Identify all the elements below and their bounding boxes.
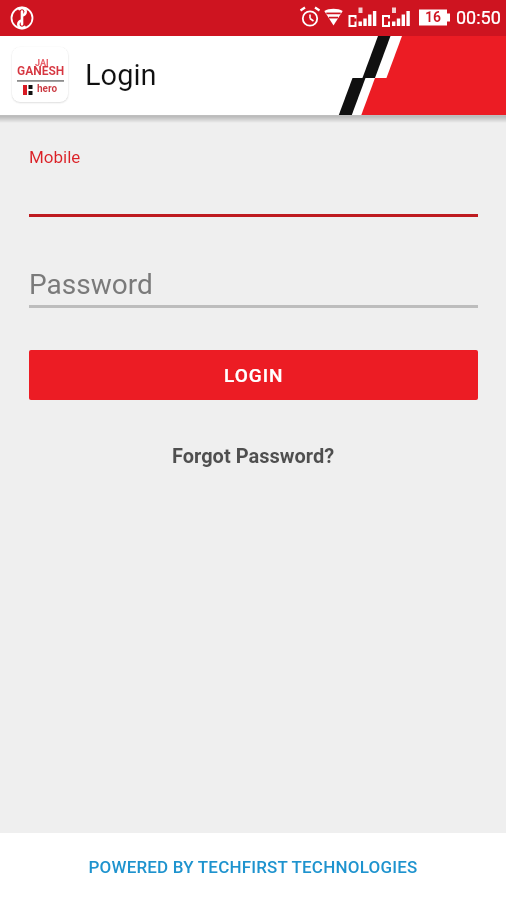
staticText: Mobile bbox=[29, 147, 81, 167]
button[interactable]: Mobile bbox=[29, 147, 506, 217]
button[interactable]: Password bbox=[29, 268, 506, 308]
button[interactable]: Jai Ganesh Hero logo bbox=[12, 47, 68, 102]
staticText: Forgot Password? bbox=[172, 444, 335, 467]
staticText: GANESH bbox=[17, 64, 65, 78]
staticText: POWERED BY TECHFIRST TECHNOLOGIES bbox=[88, 857, 418, 877]
staticText: Password bbox=[29, 268, 153, 301]
staticText: LOGIN bbox=[224, 364, 284, 386]
button[interactable]: Forgot Password? bbox=[160, 440, 347, 471]
staticText: hero bbox=[37, 83, 58, 95]
staticText: Login bbox=[85, 58, 157, 92]
button[interactable]: LOGIN bbox=[29, 350, 478, 400]
staticText: 00:50 bbox=[456, 7, 501, 28]
staticText: JAI bbox=[35, 58, 49, 69]
staticText: 16 bbox=[425, 9, 442, 25]
